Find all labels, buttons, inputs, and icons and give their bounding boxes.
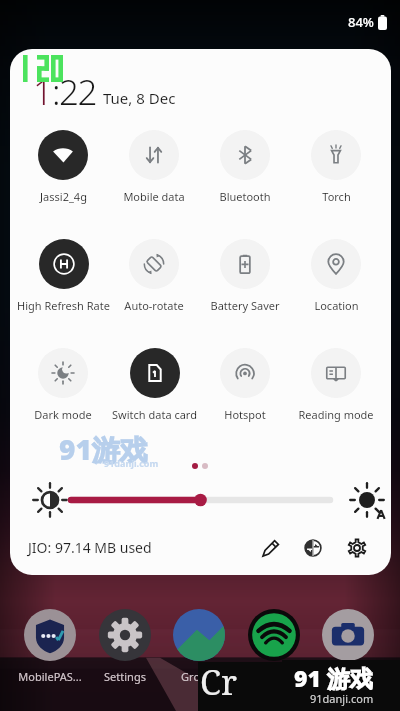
button[interactable]: Auto-rotate	[104, 233, 204, 325]
staticText: Reading mode	[298, 407, 374, 422]
staticText: Grow...	[181, 669, 217, 684]
button[interactable]: camera	[311, 609, 385, 669]
staticText: 84%	[348, 13, 374, 31]
button[interactable]: Bluetooth	[195, 124, 295, 216]
button[interactable]: Dark mode	[13, 342, 113, 434]
button[interactable]: Reading mode	[286, 342, 386, 434]
staticText: 91游戏	[59, 430, 148, 468]
button[interactable]: Hotspot	[195, 342, 295, 434]
button[interactable]: Torch	[286, 124, 386, 216]
staticText: Jassi2_4g	[40, 189, 87, 204]
staticText: 91danji.com	[104, 457, 159, 469]
button[interactable]: shield	[13, 609, 87, 684]
staticText: Switch data card	[112, 407, 197, 422]
staticText: Location	[314, 298, 359, 313]
staticText: Bluetooth	[219, 189, 271, 204]
button[interactable]: Location	[286, 233, 386, 325]
staticText: :22	[52, 68, 97, 116]
staticText: JIO: 97.14 MB used	[28, 538, 152, 557]
staticText: Torch	[322, 189, 351, 204]
staticText: 1	[33, 68, 52, 116]
staticText: MobilePAS...	[18, 669, 82, 684]
staticText: Cr	[200, 659, 237, 705]
staticText: Settings	[104, 669, 146, 684]
button[interactable]: Jassi2_4g	[13, 124, 113, 216]
button[interactable]: Mobile data	[104, 124, 204, 216]
staticText: Hotspot	[224, 407, 266, 422]
staticText: Battery Saver	[210, 298, 280, 313]
button[interactable]: Settings	[341, 532, 373, 564]
button[interactable]: Auto brightness	[346, 479, 388, 521]
staticText: High Refresh Rate	[17, 298, 110, 313]
button[interactable]: Switch data card	[104, 342, 204, 434]
staticText: Auto-rotate	[124, 298, 184, 313]
button[interactable]: Power menu	[297, 532, 329, 564]
button[interactable]: spotify	[237, 609, 311, 669]
staticText: Tue, 8 Dec	[103, 88, 176, 108]
staticText: 91danji.com	[310, 691, 374, 706]
button[interactable]: Brightness slider	[58, 489, 343, 511]
button[interactable]: Battery Saver	[195, 233, 295, 325]
staticText: 91 游戏	[294, 662, 373, 693]
button[interactable]: grow	[162, 609, 236, 684]
button[interactable]: High Refresh Rate	[13, 233, 113, 325]
button[interactable]: gear	[88, 609, 162, 684]
button[interactable]: Brightness	[29, 479, 71, 521]
staticText: Dark mode	[34, 407, 92, 422]
staticText: Mobile data	[123, 189, 185, 204]
button[interactable]: Edit tiles	[255, 532, 287, 564]
